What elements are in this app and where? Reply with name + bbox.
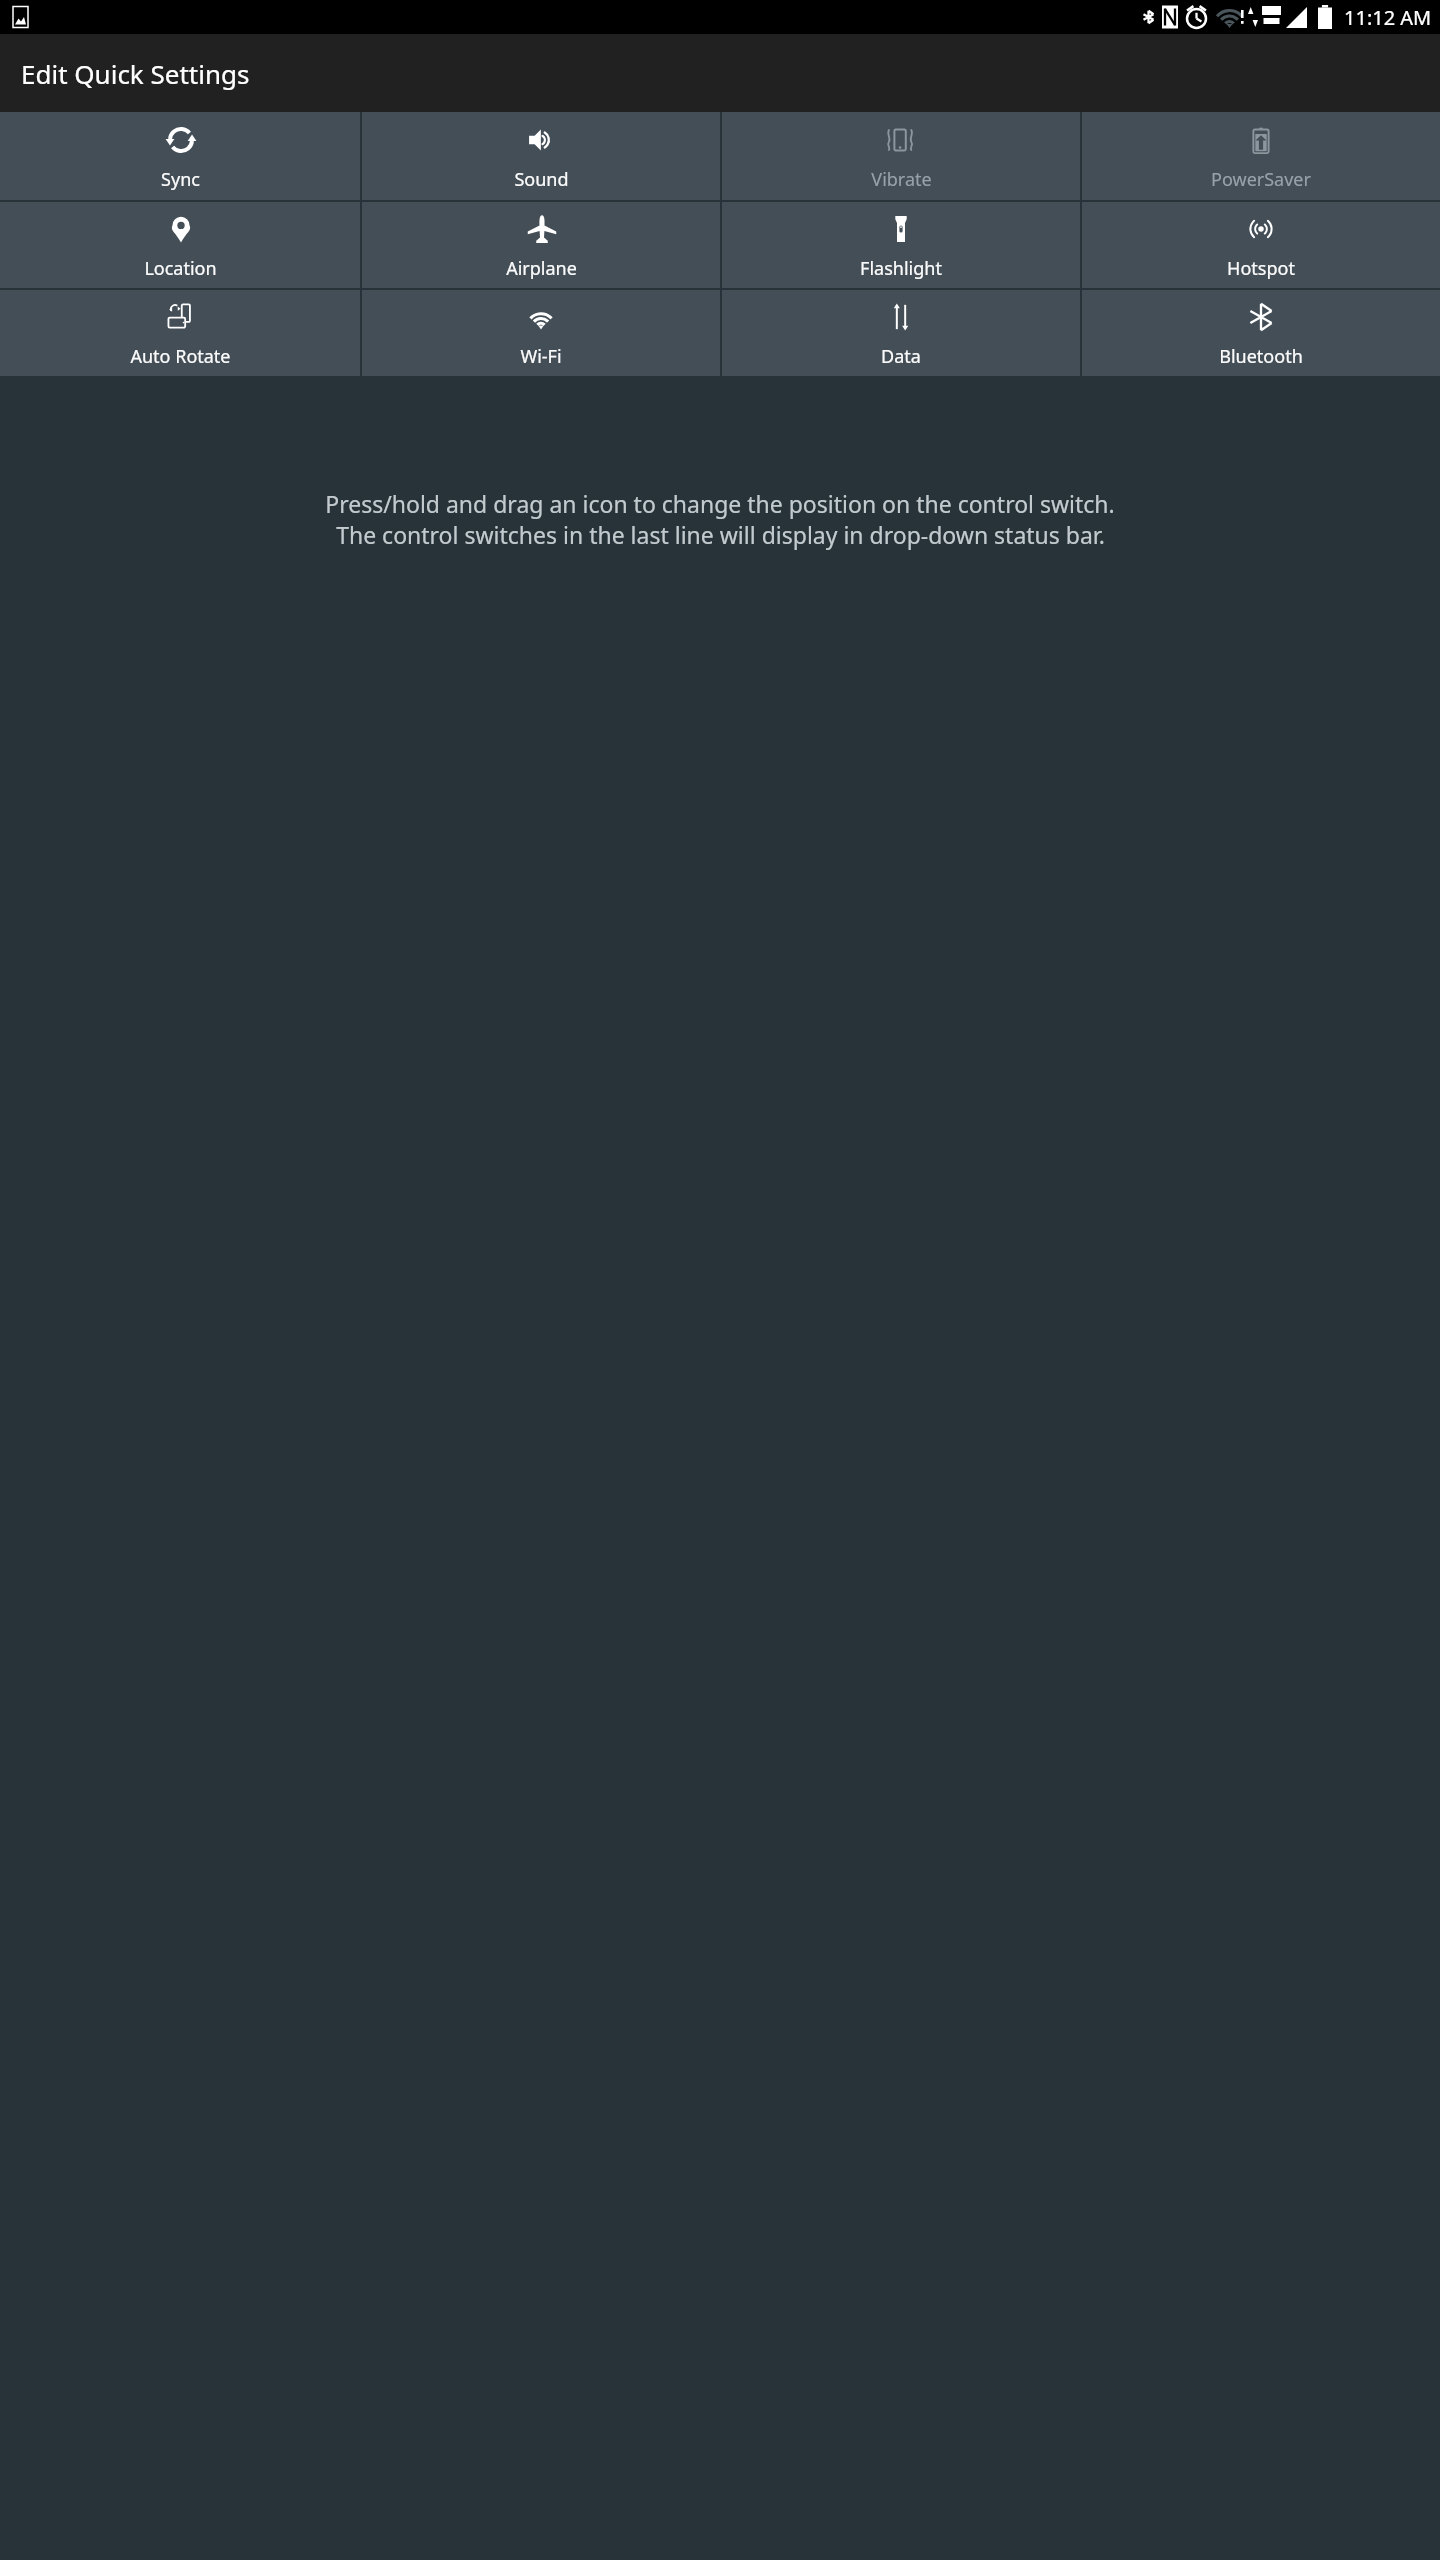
button[interactable]: Sync — [0, 112, 360, 200]
staticText: Wi-Fi — [520, 344, 562, 369]
staticText: 11:12 AM — [1344, 4, 1432, 31]
staticText: The control switches in the last line wi… — [336, 519, 1105, 550]
staticText: Data — [881, 344, 921, 369]
staticText: Press/hold and drag an icon to change th… — [325, 488, 1115, 519]
button[interactable]: Hotspot — [1082, 202, 1440, 288]
button[interactable]: Location — [0, 202, 360, 288]
button[interactable]: Flashlight — [722, 202, 1080, 288]
button[interactable]: Auto Rotate — [0, 290, 360, 376]
button[interactable]: Sound — [362, 112, 720, 200]
staticText: Sound — [514, 167, 569, 192]
staticText: Flashlight — [860, 256, 942, 281]
button[interactable]: Vibrate — [722, 112, 1080, 200]
staticText: Auto Rotate — [130, 344, 231, 369]
staticText: PowerSaver — [1211, 167, 1311, 192]
staticText: Sync — [161, 167, 200, 192]
button[interactable]: Wi-Fi — [362, 290, 720, 376]
staticText: Bluetooth — [1219, 344, 1303, 369]
staticText: Location — [144, 256, 217, 281]
button[interactable]: Airplane — [362, 202, 720, 288]
staticText: Edit Quick Settings — [21, 56, 250, 91]
staticText: Hotspot — [1227, 256, 1295, 281]
button[interactable]: PowerSaver — [1082, 112, 1440, 200]
button[interactable]: Bluetooth — [1082, 290, 1440, 376]
staticText: Vibrate — [871, 167, 932, 192]
staticText: Airplane — [506, 256, 577, 281]
button[interactable]: Data — [722, 290, 1080, 376]
